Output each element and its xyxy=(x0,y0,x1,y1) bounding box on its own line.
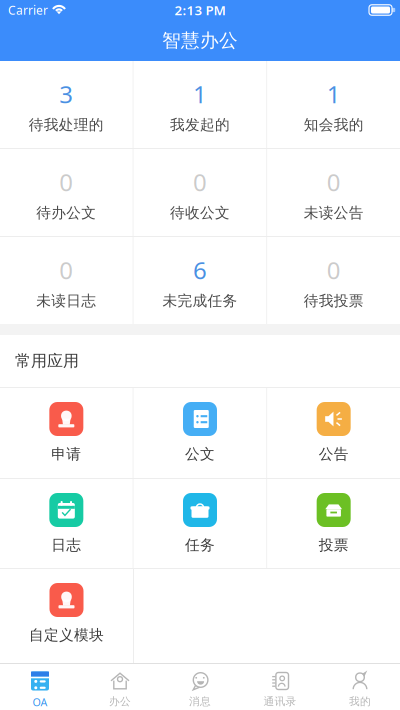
button[interactable]: 1 xyxy=(134,61,266,148)
button[interactable]: 任务 xyxy=(134,479,266,568)
staticText: 自定义模块 xyxy=(29,626,104,644)
staticText: 1 xyxy=(193,78,207,110)
staticText: 0 xyxy=(327,166,341,198)
staticText: 日志 xyxy=(51,536,81,554)
button[interactable]: 公文 xyxy=(134,388,266,478)
staticText: 公文 xyxy=(185,445,215,463)
staticText: 0 xyxy=(59,254,73,286)
staticText: 6 xyxy=(193,254,207,286)
staticText: 办公 xyxy=(109,695,131,708)
button[interactable]: 消息 xyxy=(160,664,240,710)
staticText: 待办公文 xyxy=(36,204,96,222)
staticText: 待我投票 xyxy=(304,292,364,310)
button[interactable]: 日志 xyxy=(0,479,133,568)
staticText: 待收公文 xyxy=(170,204,230,222)
staticText: 1 xyxy=(327,78,341,110)
staticText: 0 xyxy=(193,166,207,198)
button[interactable]: 投票 xyxy=(267,479,400,568)
button[interactable]: 办公 xyxy=(80,664,160,710)
staticText: 消息 xyxy=(189,695,211,708)
staticText: 未读公告 xyxy=(304,204,364,222)
staticText: 常用应用 xyxy=(15,351,79,371)
button[interactable]: 公告 xyxy=(267,388,400,478)
button[interactable]: 1 xyxy=(267,61,400,148)
staticText: 3 xyxy=(59,78,73,110)
staticText: 2:13 PM xyxy=(174,1,225,19)
button[interactable]: 3 xyxy=(0,61,133,148)
staticText: 待我处理的 xyxy=(29,116,104,134)
staticText: 公告 xyxy=(319,445,349,463)
button[interactable]: 申请 xyxy=(0,388,133,478)
staticText: 申请 xyxy=(51,445,81,463)
staticText: 通讯录 xyxy=(263,695,296,708)
button[interactable]: 0 xyxy=(267,149,400,236)
staticText: OA xyxy=(32,695,47,709)
staticText: 智慧办公 xyxy=(162,29,238,52)
button[interactable]: 0 xyxy=(134,149,266,236)
staticText: 投票 xyxy=(319,536,349,554)
staticText: 任务 xyxy=(185,536,215,554)
staticText: 0 xyxy=(327,254,341,286)
button[interactable]: 自定义模块 xyxy=(0,569,133,663)
button[interactable]: 通讯录 xyxy=(240,664,320,710)
staticText: 未完成任务 xyxy=(162,292,237,310)
button[interactable]: 0 xyxy=(0,237,133,324)
button[interactable]: 0 xyxy=(267,237,400,324)
staticText: 我发起的 xyxy=(170,116,230,134)
staticText: 知会我的 xyxy=(304,116,364,134)
staticText: 我的 xyxy=(349,695,371,708)
staticText: 0 xyxy=(59,166,73,198)
button[interactable]: 6 xyxy=(134,237,266,324)
staticText: 未读日志 xyxy=(36,292,96,310)
button[interactable]: 0 xyxy=(0,149,133,236)
button[interactable]: OA xyxy=(0,664,80,710)
button[interactable]: 我的 xyxy=(320,664,400,710)
staticText: Carrier xyxy=(8,2,48,18)
